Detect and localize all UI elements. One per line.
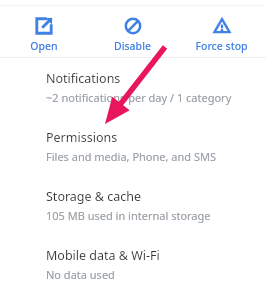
staticText: 105 MB used in internal storage	[46, 208, 211, 223]
staticText: Mobile data & Wi-Fi	[46, 247, 160, 264]
staticText: Files and media, Phone, and SMS	[46, 149, 216, 164]
staticText: Permissions	[46, 129, 118, 146]
button[interactable]: Force stop	[177, 11, 266, 53]
button[interactable]: Disable	[88, 11, 177, 53]
button[interactable]: Permissions	[0, 117, 266, 176]
button[interactable]: Open	[0, 11, 88, 53]
staticText: No data used	[46, 267, 115, 282]
staticText: Notifications	[46, 70, 121, 87]
staticText: ~2 notifications per day / 1 category tu…	[46, 90, 252, 105]
button[interactable]: Storage & cache	[0, 176, 266, 235]
staticText: Disable	[114, 39, 151, 53]
staticText: Force stop	[195, 39, 248, 53]
staticText: Storage & cache	[46, 188, 142, 205]
staticText: Open	[30, 39, 58, 53]
button[interactable]: Notifications	[0, 58, 266, 117]
button[interactable]: Mobile data & Wi-Fi	[0, 235, 266, 294]
